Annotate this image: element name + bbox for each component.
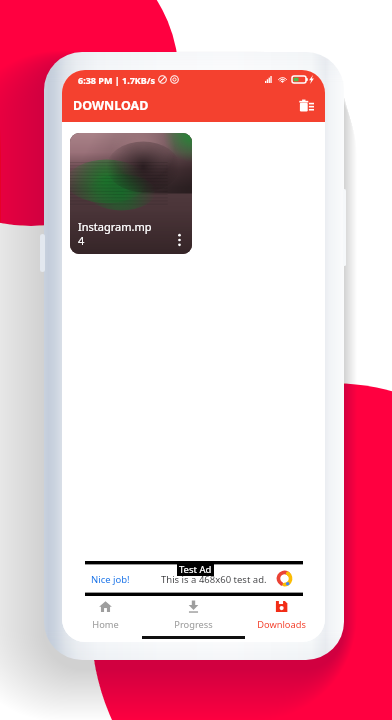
staticText: DOWNLOAD — [73, 97, 149, 114]
button[interactable]: Clear all downloads — [293, 93, 319, 119]
staticText: This is a 468x60 test ad. — [161, 573, 267, 586]
staticText: Nice job! — [91, 573, 130, 586]
button[interactable]: Downloads — [237, 596, 325, 632]
staticText: Instagram.mp4 — [78, 219, 156, 248]
button[interactable]: Home — [62, 596, 149, 632]
staticText: Downloads — [257, 618, 306, 631]
button[interactable]: Nice job! — [85, 561, 303, 596]
staticText: 6:38 PM | 1.7KB/s — [78, 74, 156, 86]
button[interactable]: Progress — [149, 596, 237, 632]
staticText: Progress — [174, 618, 213, 631]
button[interactable]: More options — [169, 230, 189, 250]
button[interactable]: Instagram.mp4 — [70, 133, 192, 254]
staticText: Home — [92, 618, 119, 631]
staticText: Test Ad — [179, 563, 212, 576]
